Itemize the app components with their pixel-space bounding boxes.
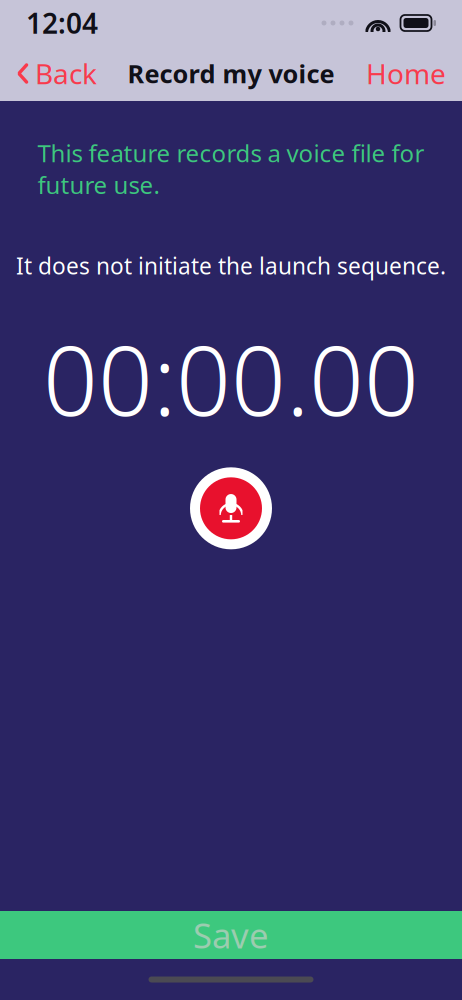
staticText: Save xyxy=(193,912,269,958)
button[interactable]: Home xyxy=(356,45,456,102)
staticText: Home xyxy=(366,55,446,92)
button[interactable]: Back xyxy=(6,45,107,102)
staticText: Back xyxy=(35,55,97,92)
staticText: It does not initiate the launch sequence… xyxy=(16,251,446,281)
staticText: 12:04 xyxy=(26,4,98,42)
button[interactable]: Record xyxy=(187,464,275,552)
staticText: This feature records a voice file for fu… xyxy=(37,137,424,201)
button[interactable]: Save xyxy=(0,911,462,959)
staticText: Record my voice xyxy=(127,57,334,90)
staticText: 00:00.00 xyxy=(43,315,419,442)
